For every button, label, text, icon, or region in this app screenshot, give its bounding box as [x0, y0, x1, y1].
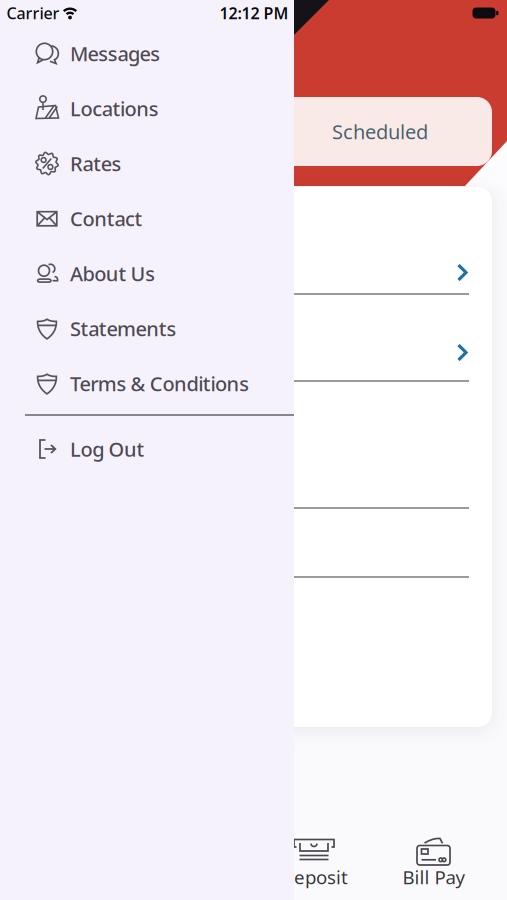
button[interactable]: Contact	[0, 191, 294, 246]
staticText: 12:12 PM	[219, 2, 288, 24]
staticText: About Us	[70, 260, 155, 287]
staticText: Log Out	[70, 436, 145, 462]
button[interactable]: About Us	[0, 246, 294, 301]
button[interactable]: Locations	[0, 81, 294, 136]
button[interactable]: Deposit	[262, 830, 366, 892]
staticText: Bill Pay	[402, 865, 465, 889]
button[interactable]: Log Out	[0, 421, 294, 476]
button[interactable]: Rates	[0, 136, 294, 191]
staticText: Contact	[70, 205, 143, 232]
button[interactable]: Messages	[0, 26, 294, 81]
button[interactable]: Statements	[0, 301, 294, 356]
button[interactable]: Scheduled	[260, 97, 492, 166]
staticText: Locations	[70, 95, 159, 122]
staticText: Deposit	[280, 865, 348, 889]
staticText: Rates	[70, 150, 121, 177]
button[interactable]: Terms & Conditions	[0, 356, 294, 411]
button[interactable]: Bill Pay	[382, 830, 486, 892]
staticText: Carrier	[6, 2, 59, 24]
staticText: Messages	[70, 40, 160, 67]
staticText: Statements	[70, 315, 176, 342]
staticText: Scheduled	[332, 118, 428, 145]
staticText: Terms & Conditions	[70, 370, 249, 397]
